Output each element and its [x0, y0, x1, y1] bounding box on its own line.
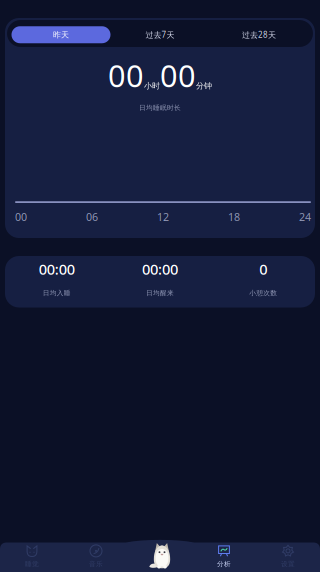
button[interactable]: 分析: [192, 542, 256, 571]
staticText: 小时: [144, 81, 160, 91]
staticText: 00: [15, 210, 27, 224]
button[interactable]: Start sleep: [148, 541, 176, 569]
staticText: 00:00: [39, 259, 75, 279]
button[interactable]: 睡觉: [0, 542, 64, 571]
button[interactable]: 过去28天: [209, 26, 308, 43]
staticText: 昨天: [53, 30, 69, 40]
staticText: 过去7天: [145, 29, 174, 40]
staticText: 过去28天: [242, 29, 276, 40]
staticText: 00:00: [142, 259, 178, 279]
button[interactable]: 昨天: [11, 26, 110, 43]
staticText: 设置: [281, 560, 295, 568]
staticText: 24: [299, 210, 311, 224]
staticText: 00: [160, 55, 196, 96]
staticText: 06: [86, 210, 98, 224]
staticText: 小憩次数: [249, 289, 277, 297]
staticText: 音乐: [89, 560, 103, 568]
staticText: 00: [108, 55, 144, 96]
staticText: 18: [228, 210, 240, 224]
staticText: 0: [259, 259, 267, 279]
staticText: 12: [157, 210, 169, 224]
staticText: 日均醒来: [146, 289, 174, 297]
staticText: 睡觉: [25, 560, 39, 568]
button[interactable]: 设置: [256, 542, 320, 571]
staticText: 日均睡眠时长: [139, 104, 181, 112]
button[interactable]: 过去7天: [110, 26, 209, 43]
staticText: 分析: [217, 560, 231, 568]
staticText: 日均入睡: [43, 289, 71, 297]
button[interactable]: 音乐: [64, 542, 128, 571]
staticText: 分钟: [196, 81, 212, 91]
